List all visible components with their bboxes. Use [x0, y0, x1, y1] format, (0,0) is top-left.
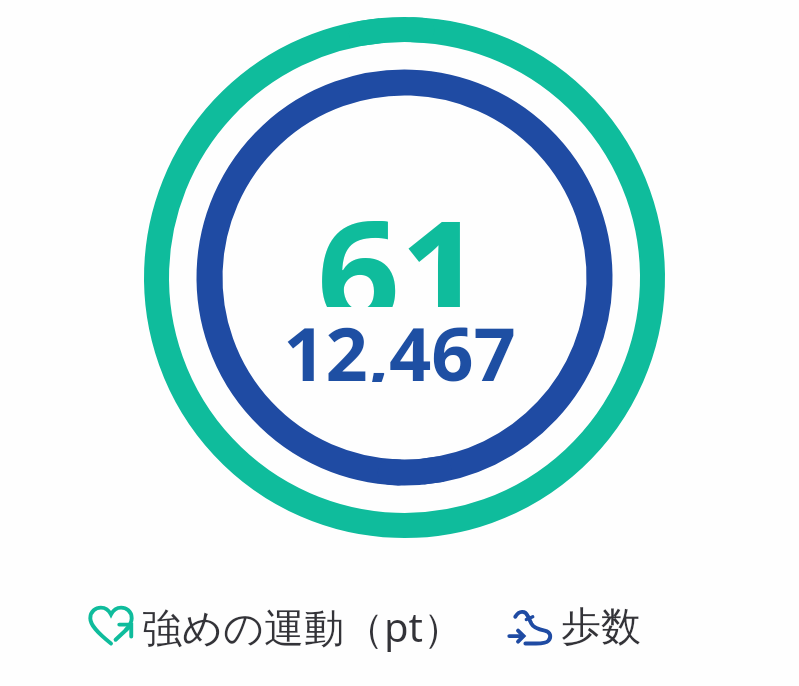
other: 歩数 — [507, 603, 553, 649]
other: 強めの運動 — [88, 603, 134, 649]
button[interactable]: 歩数 — [507, 598, 641, 654]
button[interactable]: 強めの運動 — [88, 598, 463, 654]
button[interactable] — [144, 17, 665, 538]
staticText: 歩数 — [561, 601, 641, 651]
staticText: 61 — [317, 171, 483, 307]
staticText: 強めの運動（pt） — [142, 599, 463, 654]
staticText: 12,467 — [283, 302, 516, 382]
